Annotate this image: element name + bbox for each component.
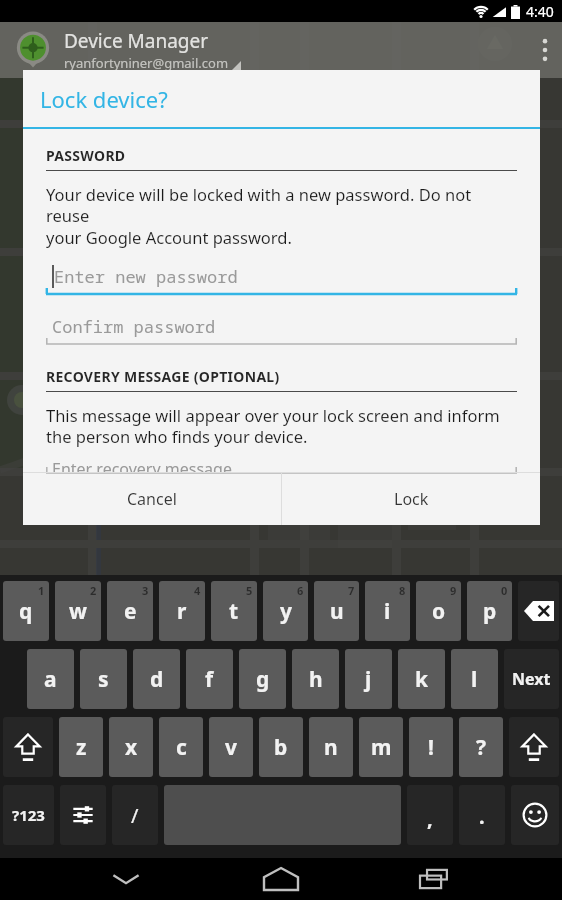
button[interactable]: ? bbox=[459, 717, 503, 777]
button[interactable]: f bbox=[186, 649, 233, 709]
staticText: v bbox=[225, 733, 237, 762]
staticText: 2 bbox=[90, 583, 97, 598]
button[interactable]: e bbox=[107, 581, 153, 641]
button[interactable]: u bbox=[314, 581, 359, 641]
staticText: m bbox=[371, 733, 392, 762]
button[interactable]: w bbox=[55, 581, 101, 641]
staticText: ryanfortyniner@gmail.com bbox=[64, 54, 229, 72]
button[interactable]: x bbox=[109, 717, 153, 777]
button[interactable]: Home bbox=[252, 858, 310, 900]
button[interactable]: n bbox=[309, 717, 353, 777]
button[interactable]: v bbox=[209, 717, 253, 777]
button[interactable]: h bbox=[292, 649, 339, 709]
staticText: c bbox=[176, 733, 187, 762]
button[interactable]: z bbox=[59, 717, 103, 777]
button[interactable]: ?123 bbox=[3, 785, 54, 845]
staticText: h bbox=[309, 665, 323, 694]
button[interactable]: y bbox=[263, 581, 308, 641]
staticText: Next bbox=[512, 668, 551, 690]
staticText: y bbox=[280, 597, 292, 626]
button[interactable]: , bbox=[407, 785, 453, 845]
button[interactable]: k bbox=[398, 649, 445, 709]
staticText: ! bbox=[428, 733, 434, 762]
staticText: e bbox=[124, 597, 137, 626]
button[interactable]: q bbox=[3, 581, 49, 641]
button[interactable]: c bbox=[159, 717, 203, 777]
staticText: 9 bbox=[450, 583, 457, 598]
staticText: k bbox=[415, 665, 429, 694]
staticText: l bbox=[471, 665, 478, 694]
staticText: Confirm password bbox=[52, 315, 216, 338]
staticText: RECOVERY MESSAGE (OPTIONAL) bbox=[46, 367, 280, 386]
staticText: Your device will be locked with a new pa… bbox=[46, 183, 517, 249]
staticText: w bbox=[69, 597, 87, 626]
staticText: ? bbox=[476, 733, 487, 762]
staticText: j bbox=[365, 665, 372, 694]
button[interactable]: Cancel bbox=[23, 473, 281, 525]
staticText: d bbox=[150, 665, 164, 694]
staticText: x bbox=[125, 733, 138, 762]
button[interactable]: Shift bbox=[3, 717, 53, 777]
staticText: ?123 bbox=[12, 805, 45, 825]
button[interactable]: p bbox=[467, 581, 512, 641]
staticText: Cancel bbox=[127, 488, 177, 510]
other: Space bbox=[161, 781, 404, 849]
staticText: 7 bbox=[348, 583, 355, 598]
staticText: Lock device? bbox=[40, 84, 168, 114]
staticText: 4 bbox=[194, 583, 201, 598]
button[interactable]: g bbox=[239, 649, 286, 709]
button[interactable]: More options bbox=[542, 37, 548, 63]
button[interactable]: Recent apps bbox=[407, 858, 465, 900]
button[interactable]: r bbox=[159, 581, 205, 641]
staticText: Enter new password bbox=[54, 265, 238, 288]
button[interactable]: Emoji bbox=[511, 785, 559, 845]
button[interactable]: Enter new password bbox=[46, 259, 517, 299]
button[interactable]: ! bbox=[409, 717, 453, 777]
staticText: Enter recovery message bbox=[52, 458, 232, 472]
button[interactable]: / bbox=[112, 785, 158, 845]
staticText: q bbox=[19, 597, 33, 626]
button[interactable]: Confirm password bbox=[46, 309, 517, 349]
button[interactable]: Input settings bbox=[60, 785, 106, 845]
button[interactable]: a bbox=[27, 649, 74, 709]
staticText: 4:40 bbox=[526, 2, 554, 21]
staticText: o bbox=[432, 597, 446, 626]
button[interactable]: i bbox=[365, 581, 410, 641]
staticText: PASSWORD bbox=[46, 146, 126, 165]
button[interactable]: Hide keyboard bbox=[97, 858, 155, 900]
button[interactable]: d bbox=[133, 649, 180, 709]
staticText: , bbox=[427, 805, 433, 832]
button[interactable]: Enter recovery message bbox=[46, 458, 517, 472]
staticText: t bbox=[229, 597, 239, 626]
staticText: b bbox=[274, 733, 288, 762]
staticText: Lock bbox=[394, 488, 429, 510]
staticText: r bbox=[177, 597, 187, 626]
button[interactable]: . bbox=[459, 785, 505, 845]
staticText: / bbox=[131, 802, 139, 829]
staticText: Device Manager bbox=[64, 28, 209, 54]
button[interactable]: l bbox=[451, 649, 498, 709]
staticText: z bbox=[76, 733, 87, 762]
staticText: n bbox=[324, 733, 338, 762]
staticText: 0 bbox=[501, 583, 508, 598]
staticText: g bbox=[256, 665, 270, 694]
button[interactable]: o bbox=[416, 581, 461, 641]
button[interactable]: s bbox=[80, 649, 127, 709]
staticText: p bbox=[483, 597, 497, 626]
button[interactable]: Backspace bbox=[518, 581, 559, 641]
button[interactable]: Next bbox=[504, 649, 559, 709]
button[interactable]: m bbox=[359, 717, 403, 777]
button[interactable]: Lock bbox=[282, 473, 540, 525]
staticText: i bbox=[384, 597, 391, 626]
staticText: 6 bbox=[297, 583, 304, 598]
button[interactable]: Shift bbox=[509, 717, 559, 777]
staticText: u bbox=[330, 597, 344, 626]
button[interactable]: j bbox=[345, 649, 392, 709]
staticText: s bbox=[98, 665, 109, 694]
staticText: f bbox=[205, 665, 214, 694]
button[interactable]: b bbox=[259, 717, 303, 777]
button[interactable]: t bbox=[211, 581, 257, 641]
staticText: 5 bbox=[246, 583, 253, 598]
staticText: 8 bbox=[399, 583, 406, 598]
